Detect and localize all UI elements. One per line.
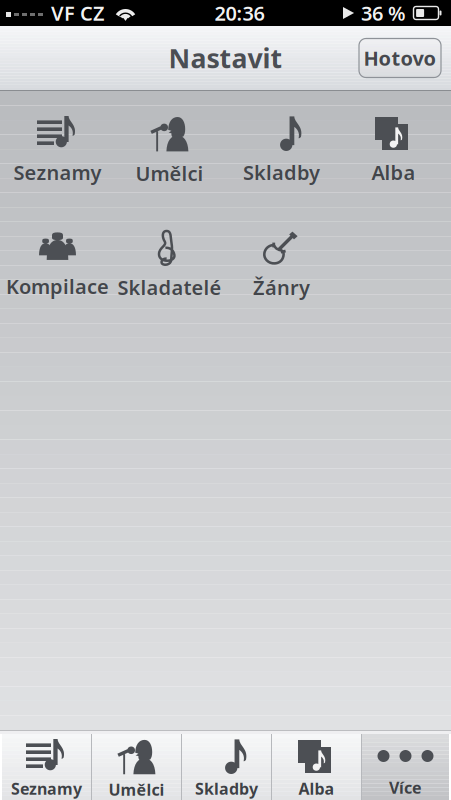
button[interactable]: Kompilace	[1, 227, 113, 341]
button[interactable]: Seznamy	[2, 734, 91, 800]
button[interactable]: Alba	[272, 734, 361, 800]
staticText: Kompilace	[6, 273, 109, 300]
button[interactable]: Umělci	[113, 113, 225, 227]
button[interactable]: Alba	[337, 113, 449, 227]
staticText: Skladatelé	[117, 274, 221, 301]
button[interactable]: Hotovo	[359, 38, 441, 77]
button[interactable]: Žánry	[225, 227, 337, 341]
button[interactable]: Umělci	[92, 734, 181, 800]
staticText: Žánry	[253, 274, 310, 301]
button[interactable]: Skladatelé	[113, 227, 225, 341]
button[interactable]: Více	[362, 734, 449, 800]
staticText: 36 %	[361, 0, 406, 26]
staticText: Alba	[371, 159, 415, 186]
staticText: 20:36	[214, 0, 264, 26]
staticText: Skladby	[195, 778, 258, 799]
staticText: Umělci	[108, 779, 164, 800]
staticText: Alba	[298, 778, 334, 799]
button[interactable]: Skladby	[182, 734, 271, 800]
button[interactable]: Skladby	[225, 113, 337, 227]
staticText: Více	[389, 777, 422, 798]
staticText: Seznamy	[11, 778, 82, 799]
button[interactable]: Seznamy	[1, 113, 113, 227]
staticText: Seznamy	[13, 159, 101, 186]
staticText: Skladby	[243, 159, 320, 186]
staticText: VF CZ	[51, 0, 105, 26]
staticText: Umělci	[135, 160, 203, 187]
staticText: Nastavit	[168, 40, 282, 76]
staticText: Hotovo	[363, 45, 436, 71]
